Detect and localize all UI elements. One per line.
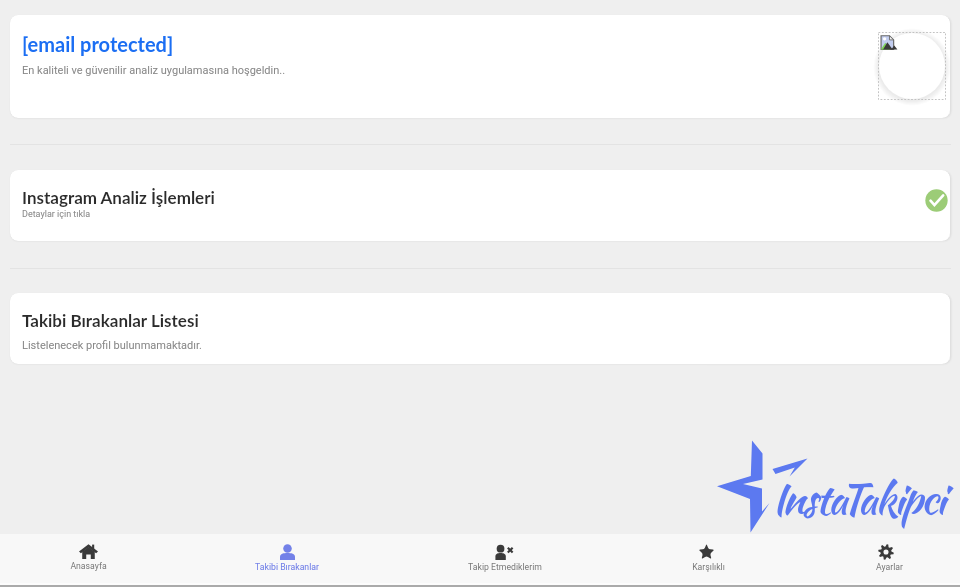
staticText: Anasayfa (70, 561, 107, 571)
other: Tamamlandı (925, 189, 948, 212)
button[interactable]: [email protected] (10, 15, 950, 118)
staticText: Karşılıklı (692, 562, 725, 572)
staticText: Instagram Analiz İşlemleri (22, 187, 215, 207)
staticText: Detaylar için tıkla (22, 209, 91, 220)
button[interactable]: Karşılıklı (618, 534, 798, 583)
staticText: Ayarlar (876, 562, 903, 572)
other: Ayarlar (878, 544, 894, 560)
other: Takibi Bırakanlar (280, 544, 295, 560)
other: Karşılıklı (698, 544, 715, 560)
staticText: Takibi Bırakanlar Listesi (22, 310, 199, 330)
button[interactable]: Ayarlar (799, 534, 960, 583)
button[interactable]: Anasayfa (0, 534, 178, 583)
other: Anasayfa (79, 544, 98, 559)
other: Takip Etmediklerim (493, 544, 514, 560)
staticText: Listelenecek profil bulunmamaktadır. (22, 339, 202, 352)
button[interactable]: Takibi Bırakanlar Listesi (10, 293, 950, 364)
staticText: Takibi Bırakanlar (255, 562, 319, 572)
staticText: InstaTakipci (772, 468, 944, 529)
staticText: En kaliteli ve güvenilir analiz uygulama… (22, 64, 286, 77)
staticText: [email protected] (22, 32, 174, 56)
button[interactable]: Takibi Bırakanlar (197, 534, 377, 583)
button[interactable]: Instagram Analiz İşlemleri (10, 170, 950, 241)
button[interactable]: Takip Etmediklerim (415, 534, 595, 583)
staticText: Takip Etmediklerim (468, 562, 542, 572)
